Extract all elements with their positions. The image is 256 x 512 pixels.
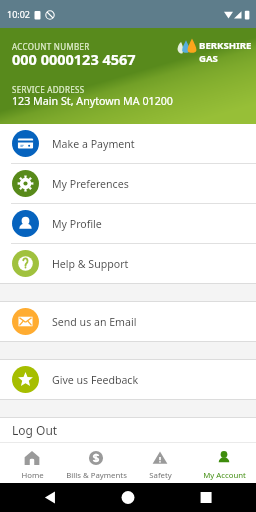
staticText: Make a Payment [52, 137, 135, 151]
button[interactable]: Log Out [0, 418, 256, 442]
staticText: Safety [149, 470, 172, 481]
staticText: Give us Feedback [52, 373, 139, 387]
staticText: Log Out [12, 422, 58, 438]
staticText: GAS [199, 52, 218, 65]
button[interactable]: My Profile [0, 204, 256, 243]
button[interactable]: Bills and Payments [64, 443, 128, 483]
staticText: Bills & Payments [66, 470, 127, 481]
button[interactable]: Help & Support [0, 244, 256, 283]
button[interactable]: Make a Payment [0, 124, 256, 163]
staticText: Help & Support [52, 257, 129, 271]
staticText: My Preferences [52, 177, 129, 191]
button[interactable]: Home [0, 443, 64, 483]
staticText: My Account [203, 470, 246, 481]
staticText: Home [21, 470, 44, 481]
staticText: Send us an Email [52, 315, 137, 329]
staticText: ACCOUNT NUMBER [12, 41, 90, 52]
button[interactable]: My Account [192, 443, 256, 483]
staticText: BERKSHIRE [199, 39, 252, 52]
staticText: 10:02 [7, 8, 31, 20]
button[interactable]: Give us Feedback [0, 360, 256, 399]
staticText: My Profile [52, 217, 102, 231]
staticText: SERVICE ADDRESS [12, 84, 85, 95]
staticText: 123 Main St, Anytown MA 01200 [12, 94, 173, 109]
staticText: 000 0000123 4567 [12, 49, 136, 69]
button[interactable]: Send us an Email [0, 302, 256, 341]
button[interactable]: Safety [128, 443, 192, 483]
button[interactable]: My Preferences [0, 164, 256, 203]
